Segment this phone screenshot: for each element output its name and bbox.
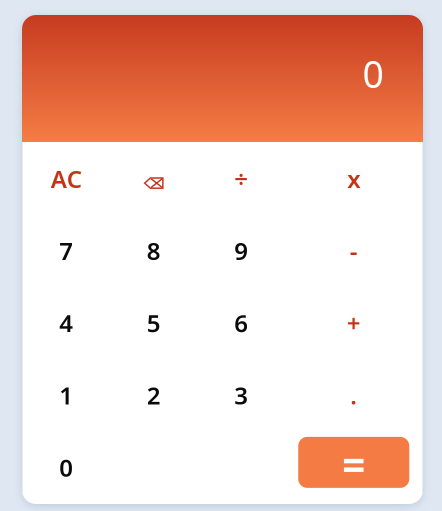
staticText: 4 <box>59 307 73 339</box>
button[interactable]: AC <box>22 142 110 215</box>
button[interactable]: 3 <box>197 359 285 431</box>
button[interactable]: 0 <box>22 431 110 503</box>
button[interactable]: - <box>285 215 422 287</box>
button[interactable]: 4 <box>22 287 110 359</box>
staticText: + <box>347 307 361 339</box>
button[interactable]: . <box>285 359 422 431</box>
button[interactable]: 5 <box>110 287 197 359</box>
button[interactable]: 2 <box>110 359 197 431</box>
staticText: AC <box>51 163 82 195</box>
staticText: - <box>350 235 358 267</box>
staticText: ÷ <box>234 163 248 195</box>
staticText: 6 <box>234 307 248 339</box>
staticText: 3 <box>234 379 248 411</box>
staticText: 9 <box>234 235 248 267</box>
button[interactable]: 7 <box>22 215 110 287</box>
button[interactable]: ÷ <box>197 142 285 215</box>
button[interactable]: Equals <box>285 431 422 503</box>
staticText: x <box>347 163 360 195</box>
staticText: 1 <box>59 379 73 411</box>
button[interactable]: Delete <box>110 142 197 215</box>
button[interactable]: 9 <box>197 215 285 287</box>
button[interactable]: 6 <box>197 287 285 359</box>
staticText: 5 <box>147 307 161 339</box>
staticText: . <box>350 379 357 411</box>
staticText: 0 <box>59 451 73 483</box>
staticText: 8 <box>147 235 161 267</box>
staticText: 0 <box>362 49 383 98</box>
staticText: 2 <box>147 379 161 411</box>
staticText: 7 <box>59 235 73 267</box>
button[interactable]: + <box>285 287 422 359</box>
button[interactable]: 8 <box>110 215 197 287</box>
button[interactable]: x <box>285 142 422 215</box>
button[interactable]: 1 <box>22 359 110 431</box>
